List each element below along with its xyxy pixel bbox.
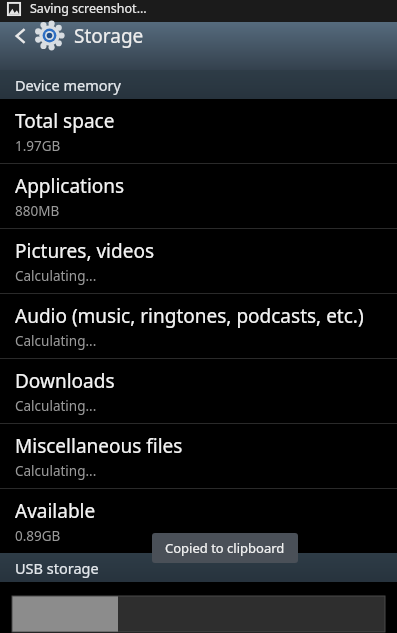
staticText: Saving screenshot...: [30, 0, 147, 17]
staticText: Calculating...: [15, 332, 97, 350]
button[interactable]: Miscellaneous files: [0, 424, 397, 488]
staticText: 0.89GB: [15, 527, 61, 545]
staticText: Audio (music, ringtones, podcasts, etc.): [15, 303, 364, 329]
button[interactable]: Audio (music, ringtones, podcasts, etc.): [0, 294, 397, 358]
staticText: Calculating...: [15, 267, 97, 285]
staticText: Storage: [74, 23, 144, 49]
staticText: Available: [15, 498, 96, 524]
button[interactable]: Available: [0, 489, 397, 553]
button[interactable]: Total space: [0, 99, 397, 163]
button[interactable]: Back: [0, 22, 397, 70]
staticText: 880MB: [15, 202, 60, 220]
button[interactable]: Downloads: [0, 359, 397, 423]
staticText: 1.97GB: [15, 137, 61, 155]
button[interactable]: Applications: [0, 164, 397, 228]
staticText: Pictures, videos: [15, 238, 154, 264]
staticText: Calculating...: [15, 462, 97, 480]
staticText: Downloads: [15, 368, 115, 394]
other: Back: [10, 25, 32, 47]
staticText: Device memory: [15, 75, 121, 95]
button[interactable]: Pictures, videos: [0, 229, 397, 293]
staticText: Copied to clipboard: [165, 539, 285, 557]
staticText: Miscellaneous files: [15, 433, 183, 459]
staticText: Total space: [15, 108, 115, 134]
staticText: USB storage: [15, 558, 99, 578]
staticText: Applications: [15, 173, 125, 199]
staticText: Calculating...: [15, 397, 97, 415]
